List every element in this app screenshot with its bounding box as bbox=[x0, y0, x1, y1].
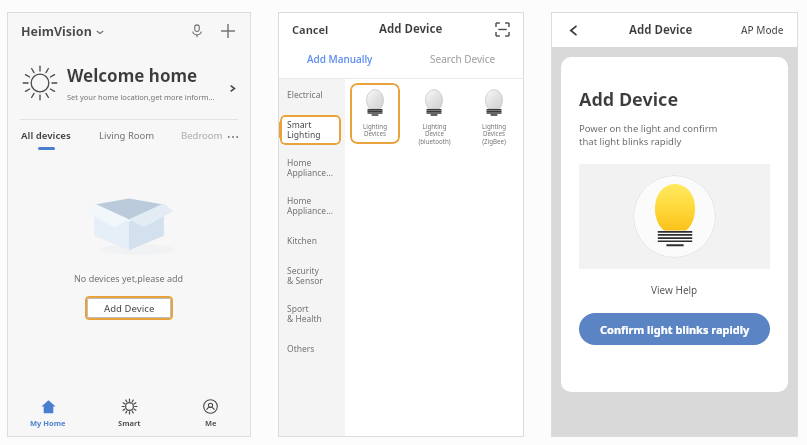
staticText: Living Room bbox=[99, 129, 155, 142]
staticText: Add Manually bbox=[307, 52, 373, 66]
staticText: Home Appliance... bbox=[287, 157, 334, 179]
staticText: View Help bbox=[651, 283, 698, 297]
button[interactable]: More rooms bbox=[225, 129, 241, 145]
staticText: Add Device bbox=[629, 22, 693, 38]
button[interactable]: Lighting Devices bbox=[350, 83, 400, 144]
button[interactable]: Others bbox=[278, 333, 345, 365]
staticText: Lighting Devices bbox=[363, 122, 387, 138]
button[interactable]: Confirm light blinks rapidly bbox=[579, 313, 770, 345]
button[interactable]: Living Room bbox=[99, 129, 155, 142]
button[interactable]: Cancel bbox=[290, 20, 331, 39]
staticText: No devices yet,please add bbox=[74, 272, 184, 284]
button[interactable]: Add Device bbox=[87, 298, 171, 318]
staticText: Welcome home bbox=[67, 64, 198, 87]
button[interactable]: Home Appliance... bbox=[278, 149, 345, 187]
staticText: Electrical bbox=[287, 89, 323, 101]
staticText: Others bbox=[287, 343, 315, 355]
button[interactable]: All devices bbox=[21, 129, 71, 150]
staticText: Me bbox=[205, 418, 217, 428]
staticText: Add Device bbox=[379, 21, 443, 37]
staticText: Home Appliance... bbox=[287, 195, 334, 217]
staticText: Confirm light blinks rapidly bbox=[600, 322, 750, 337]
button[interactable]: Voice bbox=[187, 21, 207, 41]
staticText: Smart bbox=[118, 418, 141, 428]
staticText: Lighting Device (bluetooth) bbox=[418, 122, 451, 146]
staticText: Kitchen bbox=[287, 235, 317, 247]
button[interactable]: HeimVision bbox=[21, 19, 104, 44]
button[interactable]: Lighting Devices (ZigBee) bbox=[469, 83, 519, 152]
button[interactable]: View Help bbox=[647, 279, 702, 301]
staticText: Bedroom bbox=[181, 129, 223, 142]
button[interactable]: Add bbox=[217, 20, 239, 42]
staticText: AP Mode bbox=[741, 23, 784, 37]
button[interactable]: AP Mode bbox=[739, 21, 786, 39]
button[interactable]: Home Appliance... bbox=[278, 187, 345, 225]
button[interactable]: Scan QR code bbox=[492, 19, 512, 39]
staticText: Power on the light and confirm that ligh… bbox=[579, 122, 718, 148]
button[interactable]: Smart bbox=[89, 389, 170, 437]
staticText: Security & Sensor bbox=[287, 265, 323, 287]
staticText: Search Device bbox=[430, 52, 496, 66]
staticText: Set your home location,get more inform..… bbox=[67, 92, 215, 102]
button[interactable]: Back bbox=[563, 20, 583, 40]
button[interactable]: Search Device bbox=[401, 46, 524, 72]
button[interactable]: Bedroom bbox=[181, 129, 223, 142]
staticText: Add Device bbox=[579, 87, 679, 112]
button[interactable]: Sport & Health bbox=[278, 295, 345, 333]
staticText: My Home bbox=[30, 418, 66, 428]
staticText: Smart Lighting bbox=[287, 119, 321, 141]
button[interactable]: Electrical bbox=[278, 79, 345, 111]
button[interactable]: Smart Lighting bbox=[278, 111, 345, 149]
button[interactable]: My Home bbox=[7, 389, 89, 437]
button[interactable]: Kitchen bbox=[278, 225, 345, 257]
button[interactable]: Lighting Device (bluetooth) bbox=[409, 83, 459, 152]
button[interactable]: Add Manually bbox=[278, 46, 401, 72]
staticText: Lighting Devices (ZigBee) bbox=[482, 122, 506, 146]
button[interactable]: Me bbox=[170, 389, 251, 437]
staticText: All devices bbox=[21, 129, 71, 142]
button[interactable]: Security & Sensor bbox=[278, 257, 345, 295]
staticText: Add Device bbox=[104, 302, 155, 315]
staticText: Sport & Health bbox=[287, 303, 322, 325]
button[interactable]: Welcome home bbox=[23, 64, 237, 102]
staticText: HeimVision bbox=[21, 23, 92, 40]
staticText: Cancel bbox=[292, 22, 329, 37]
